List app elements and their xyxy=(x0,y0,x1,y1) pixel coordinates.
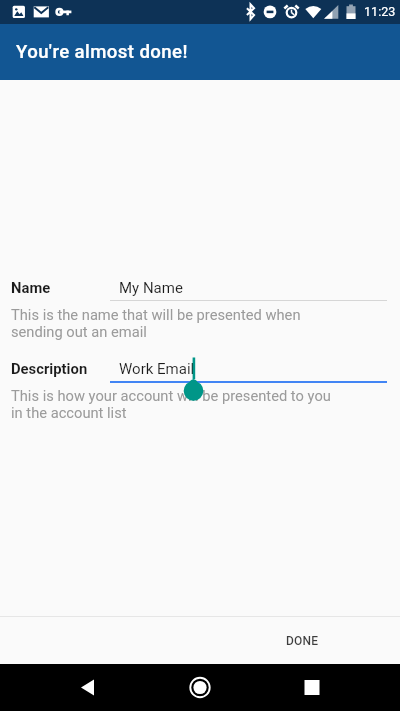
button[interactable]: Description xyxy=(11,360,88,377)
staticText: DONE xyxy=(286,634,319,648)
staticText: 11:23 xyxy=(364,4,396,19)
button[interactable]: Home xyxy=(180,664,220,711)
button[interactable]: My Name xyxy=(119,279,183,297)
button[interactable]: Work Email xyxy=(119,360,195,378)
button[interactable]: Back xyxy=(68,664,108,711)
button[interactable]: DONE xyxy=(0,617,400,664)
staticText: You're almost done! xyxy=(16,41,188,63)
button[interactable]: Name xyxy=(11,279,51,296)
staticText: This is the name that will be presented … xyxy=(11,306,301,341)
button[interactable]: Recents xyxy=(292,664,332,711)
staticText: This is how your account will be present… xyxy=(11,387,331,422)
